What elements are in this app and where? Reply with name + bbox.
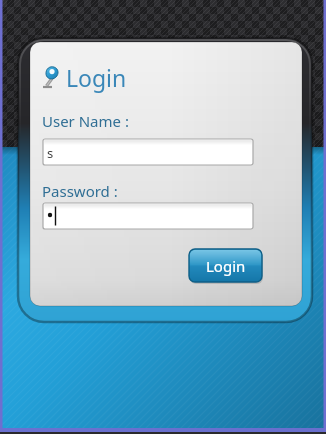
button[interactable]: Password input (43, 203, 253, 229)
staticText: Login (206, 256, 246, 276)
staticText: Login (66, 62, 127, 93)
button[interactable]: Login (189, 249, 262, 282)
staticText: Password : (42, 181, 118, 201)
button[interactable]: User name input (43, 139, 253, 165)
staticText: s (47, 144, 54, 162)
staticText: User Name : (42, 111, 129, 131)
